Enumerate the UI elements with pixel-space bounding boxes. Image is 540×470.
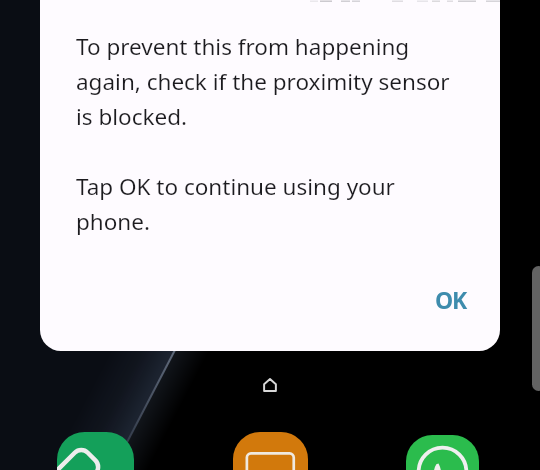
staticText: To prevent this from happening again, ch… bbox=[76, 31, 470, 237]
button[interactable]: Messages bbox=[233, 432, 308, 470]
button[interactable]: WhatsApp bbox=[406, 435, 479, 470]
button[interactable]: Home bbox=[263, 378, 277, 392]
button[interactable]: Phone bbox=[57, 432, 134, 470]
staticText: OK bbox=[435, 284, 466, 315]
button[interactable]: OK bbox=[421, 276, 480, 323]
